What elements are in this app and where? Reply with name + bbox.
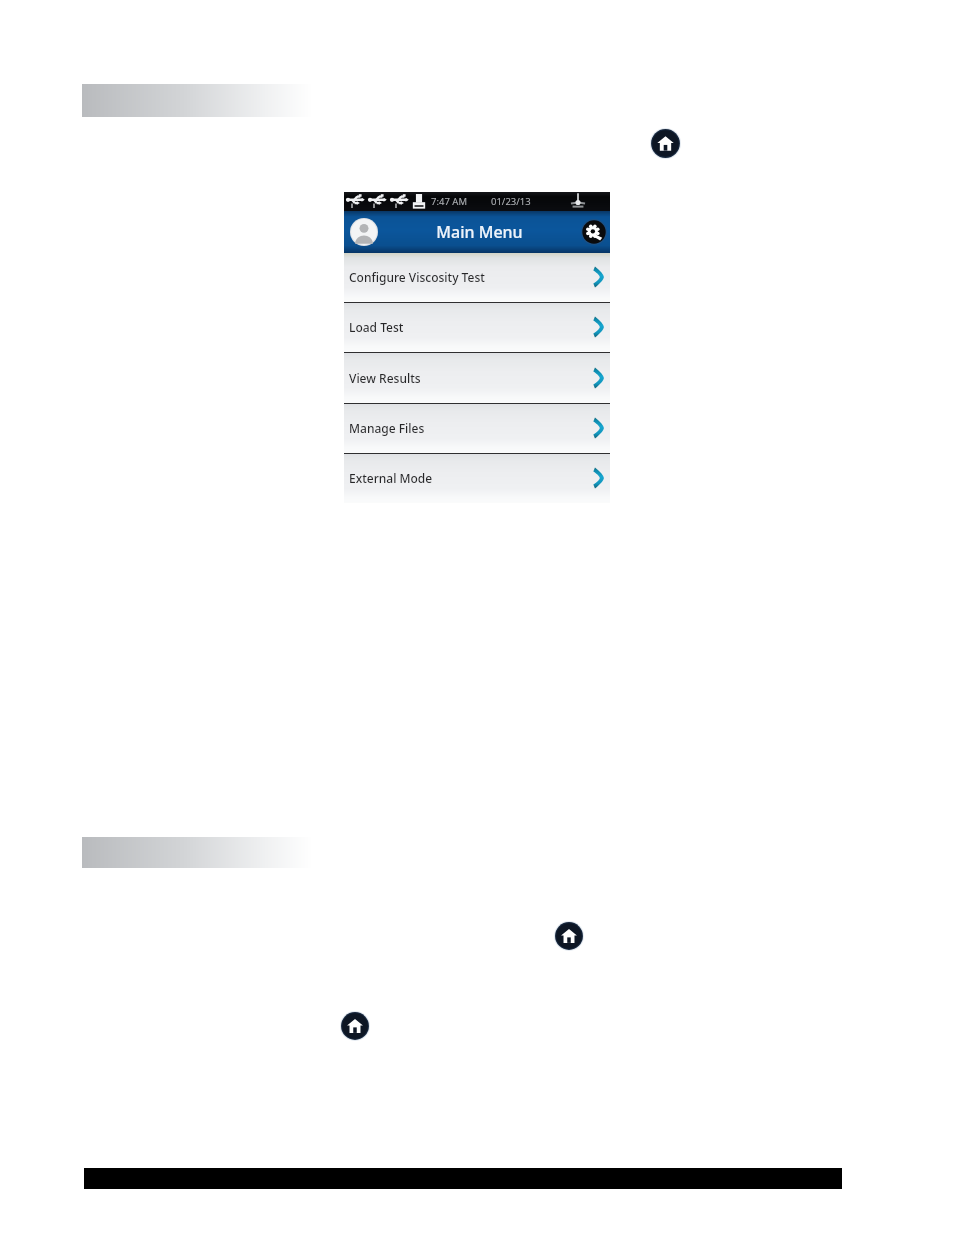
- staticText: External Mode: [349, 470, 433, 486]
- button[interactable]: Home: [340, 1011, 370, 1041]
- button[interactable]: Settings: [581, 219, 607, 245]
- button[interactable]: User profile: [350, 218, 378, 246]
- staticText: 7:47 AM: [431, 195, 468, 208]
- staticText: Main Menu: [436, 221, 523, 243]
- button[interactable]: Manage Files: [344, 403, 610, 453]
- staticText: 01/23/13: [491, 195, 531, 208]
- button[interactable]: Home: [650, 128, 681, 159]
- staticText: View Results: [349, 370, 421, 386]
- staticText: Manage Files: [349, 420, 425, 436]
- staticText: Configure Viscosity Test: [349, 269, 485, 285]
- staticText: Load Test: [349, 319, 404, 335]
- button[interactable]: External Mode: [344, 453, 610, 503]
- button[interactable]: Configure Viscosity Test: [344, 253, 610, 302]
- button[interactable]: Load Test: [344, 302, 610, 352]
- button[interactable]: View Results: [344, 352, 610, 403]
- button[interactable]: Home: [554, 921, 584, 951]
